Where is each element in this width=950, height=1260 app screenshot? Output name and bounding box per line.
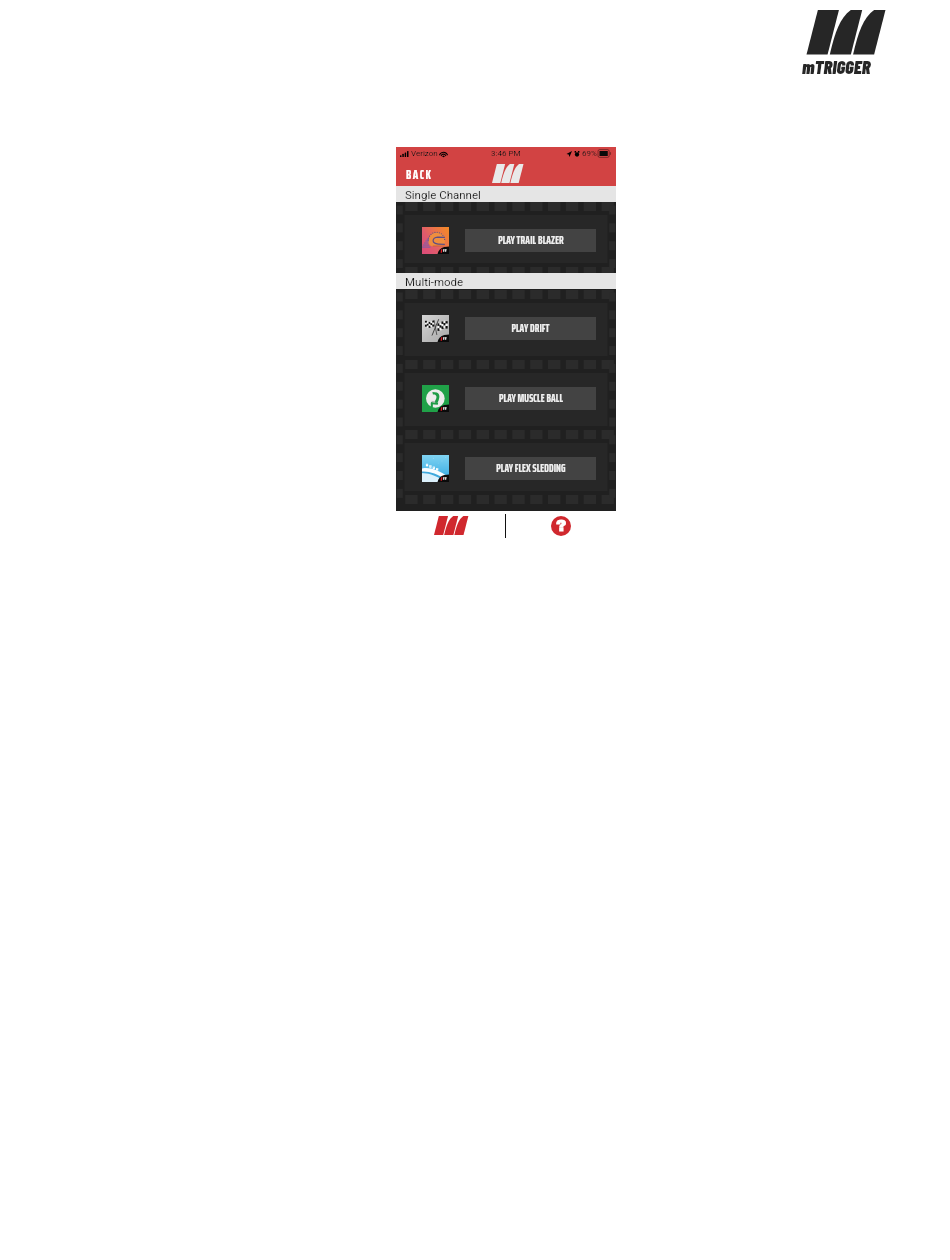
staticText: Verizon bbox=[411, 149, 438, 158]
staticText: PLAY TRAIL BLAZER bbox=[498, 232, 564, 249]
staticText: PLAY DRIFT bbox=[511, 320, 550, 337]
button[interactable]: Back bbox=[396, 160, 441, 186]
staticText: Multi-mode bbox=[405, 275, 464, 288]
staticText: mTRIGGER bbox=[802, 55, 871, 77]
button[interactable]: Home bbox=[396, 509, 505, 542]
staticText: Single Channel bbox=[405, 188, 481, 201]
staticText: PLAY MUSCLE BALL bbox=[499, 390, 563, 407]
button[interactable]: PLAY DRIFT bbox=[465, 317, 596, 340]
button[interactable]: PLAY TRAIL BLAZER bbox=[465, 229, 596, 252]
button[interactable]: PLAY MUSCLE BALL bbox=[465, 387, 596, 410]
staticText: 3:46 PM bbox=[491, 149, 521, 158]
button[interactable]: Help bbox=[506, 509, 616, 542]
staticText: ? bbox=[556, 516, 567, 534]
button[interactable]: PLAY FLEX SLEDDING bbox=[465, 457, 596, 480]
staticText: 69% bbox=[582, 149, 597, 158]
staticText: PLAY FLEX SLEDDING bbox=[496, 460, 566, 477]
staticText: BACK bbox=[406, 164, 433, 182]
